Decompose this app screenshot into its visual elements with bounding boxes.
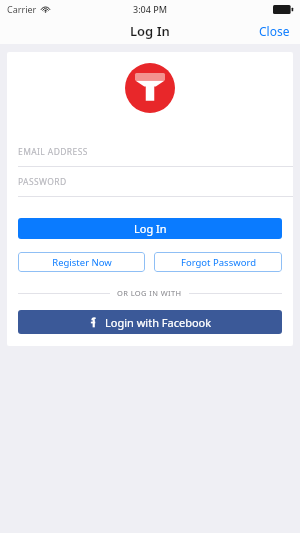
staticText: Log In [130, 22, 170, 40]
button[interactable]: Log In [18, 218, 282, 239]
staticText: Register Now [52, 256, 112, 269]
button[interactable]: PASSWORD [7, 167, 293, 197]
button[interactable]: EMAIL ADDRESS [7, 137, 293, 167]
other: App logo [125, 63, 175, 113]
button[interactable]: Register Now [18, 252, 145, 272]
staticText: Log In [134, 221, 167, 236]
staticText: 3:04 PM [133, 3, 167, 15]
staticText: Carrier [7, 3, 37, 15]
button[interactable]: Login with Facebook [18, 310, 282, 334]
staticText: PASSWORD [18, 176, 67, 188]
button[interactable]: Close [249, 19, 300, 43]
staticText: Login with Facebook [105, 315, 212, 330]
staticText: EMAIL ADDRESS [18, 146, 88, 158]
button[interactable]: Forgot Password [154, 252, 282, 272]
staticText: Close [259, 23, 290, 39]
staticText: Forgot Password [181, 256, 256, 269]
staticText: OR LOG IN WITH [117, 288, 182, 298]
